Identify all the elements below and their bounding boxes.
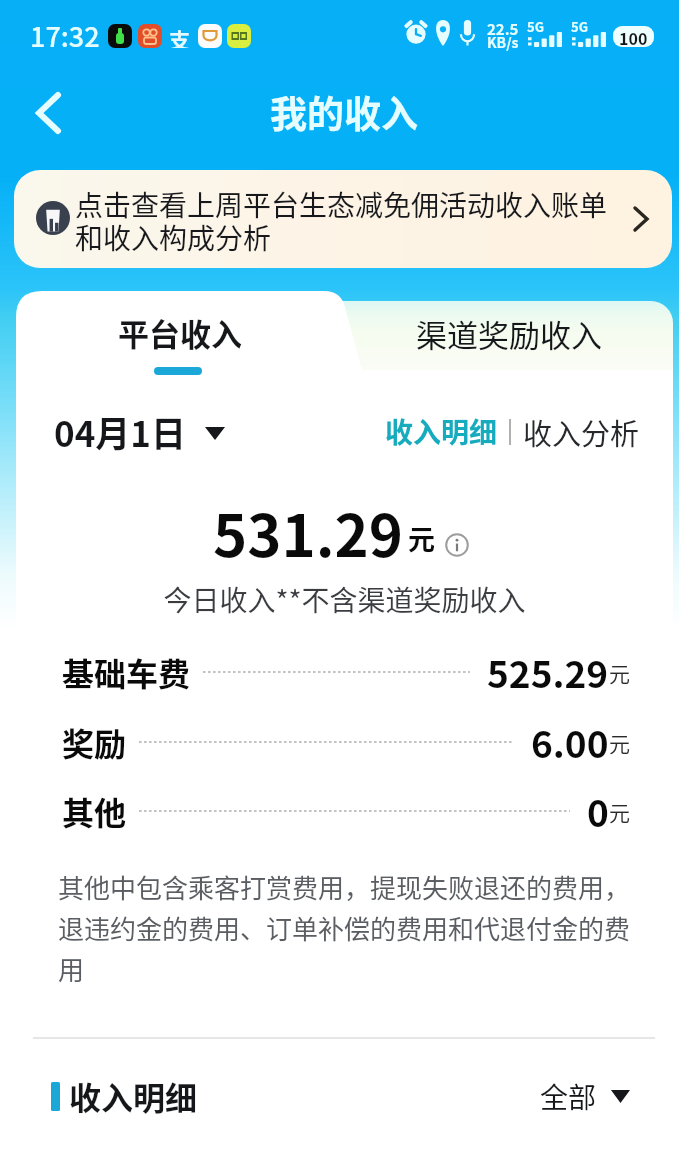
staticText: 今日收入**不含渠道奖励收入: [16, 579, 673, 620]
staticText: 100: [619, 26, 648, 47]
staticText: 04月1日: [54, 406, 186, 457]
staticText: 5G: [571, 17, 588, 36]
staticText: 平台收入: [118, 310, 242, 355]
staticText: 元: [609, 658, 630, 688]
button[interactable]: 渠道奖励收入: [16, 301, 673, 371]
staticText: 22.5: [487, 18, 519, 40]
staticText: 渠道奖励收入: [416, 311, 602, 356]
staticText: 元: [408, 519, 435, 558]
staticText: 17:32: [30, 16, 100, 55]
button[interactable]: 全部: [540, 1076, 630, 1117]
staticText: 点击查看上周平台生态减免佣活动收入账单和收入构成分析: [75, 184, 620, 257]
button[interactable]: 收入明细: [385, 411, 498, 452]
staticText: 元: [609, 797, 630, 827]
staticText: 6.00: [531, 715, 609, 769]
button[interactable]: Back: [18, 87, 70, 139]
staticText: 其他中包含乘客打赏费用，提现失败退还的费用，退违约金的费用、订单补偿的费用和代退…: [58, 868, 636, 987]
staticText: 我的收入: [270, 85, 418, 139]
button[interactable]: 平台收入: [16, 291, 345, 370]
staticText: 奖励: [62, 719, 127, 765]
staticText: 收入明细: [385, 411, 498, 452]
button[interactable]: Info: [445, 533, 469, 557]
staticText: 531.29: [213, 490, 403, 574]
button[interactable]: 04月1日: [54, 406, 225, 457]
staticText: 其他: [62, 788, 127, 834]
staticText: 基础车费: [62, 649, 191, 695]
staticText: 525.29: [487, 645, 609, 699]
staticText: 0: [587, 784, 609, 838]
staticText: 5G: [527, 17, 544, 36]
staticText: KB/s: [487, 32, 519, 52]
staticText: 收入分析: [523, 411, 640, 453]
staticText: 全部: [540, 1076, 597, 1117]
staticText: 收入明细: [69, 1073, 198, 1119]
button[interactable]: 收入分析: [523, 411, 640, 453]
staticText: 元: [609, 728, 630, 758]
staticText: 支: [169, 24, 190, 48]
button[interactable]: 点击查看上周平台生态减免佣活动收入账单和收入构成分析: [14, 170, 672, 268]
